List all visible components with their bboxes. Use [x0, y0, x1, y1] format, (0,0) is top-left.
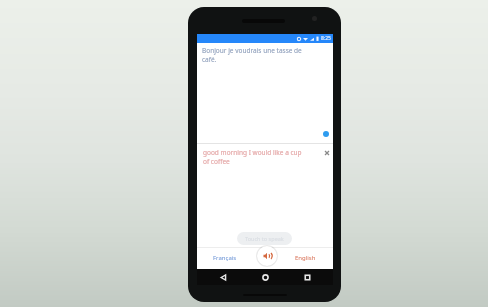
staticText: Français: [213, 254, 237, 262]
button[interactable]: Clear: [322, 148, 331, 157]
button[interactable]: Français: [200, 247, 250, 269]
button[interactable]: Back: [213, 269, 233, 285]
staticText: 8:25: [321, 35, 331, 42]
button[interactable]: Send: [323, 131, 329, 137]
button[interactable]: Recents: [297, 269, 318, 285]
button[interactable]: Touch to speak: [237, 232, 292, 245]
button[interactable]: Home: [255, 269, 276, 285]
staticText: good morning I would like a cup of coffe…: [203, 148, 307, 166]
staticText: Touch to speak: [245, 235, 284, 242]
staticText: Bonjour je voudrais une tasse de café.: [202, 46, 308, 64]
staticText: English: [295, 254, 316, 262]
button[interactable]: English: [280, 247, 330, 269]
button[interactable]: Speak: [257, 246, 277, 266]
